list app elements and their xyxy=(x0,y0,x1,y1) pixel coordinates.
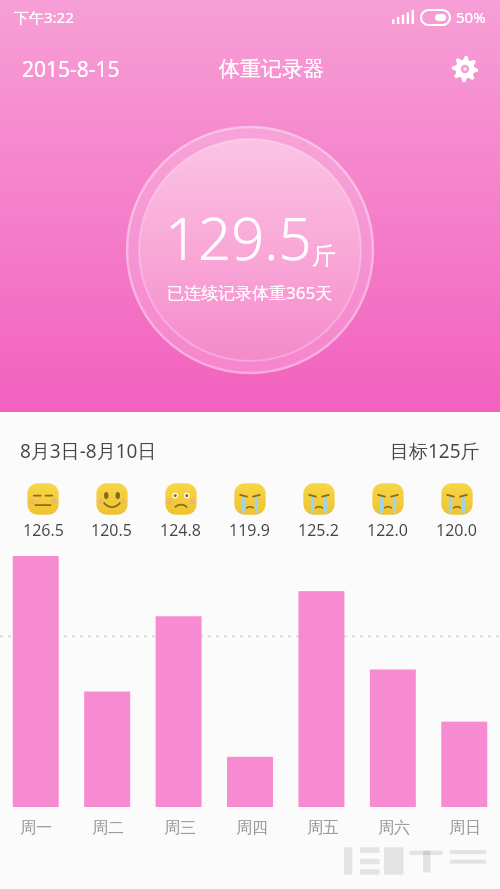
staticText: 129.5 xyxy=(165,198,312,277)
staticText: 126.5 xyxy=(23,519,64,541)
button[interactable]: 125.2 xyxy=(284,482,353,541)
staticText: 125.2 xyxy=(298,519,339,541)
staticText: 周二 xyxy=(92,818,124,838)
staticText: 8月3日-8月10日 xyxy=(20,438,157,464)
button[interactable] xyxy=(126,126,374,374)
staticText: 周四 xyxy=(236,818,268,838)
staticText: 120.0 xyxy=(436,519,477,541)
button[interactable]: 119.9 xyxy=(215,482,284,541)
staticText: 124.8 xyxy=(160,519,201,541)
button[interactable]: 126.5 xyxy=(9,482,77,541)
staticText: 已连续记录体重365天 xyxy=(167,281,333,304)
staticText: 周三 xyxy=(164,818,196,838)
button[interactable]: 2015-8-15 xyxy=(22,55,120,84)
staticText: 体重记录器 xyxy=(219,56,324,82)
staticText: 50% xyxy=(456,7,486,27)
button[interactable]: 124.8 xyxy=(146,482,215,541)
staticText: 周五 xyxy=(307,818,339,838)
staticText: 周一 xyxy=(20,818,52,838)
staticText: 周六 xyxy=(378,818,410,838)
staticText: 目标125斤 xyxy=(390,438,480,464)
button[interactable]: 120.0 xyxy=(422,482,491,541)
button[interactable]: 122.0 xyxy=(353,482,422,541)
staticText: 下午3:22 xyxy=(14,7,74,27)
staticText: 120.5 xyxy=(91,519,132,541)
button[interactable]: Settings xyxy=(448,52,482,86)
staticText: 斤 xyxy=(312,241,336,271)
staticText: 周日 xyxy=(449,818,481,838)
staticText: 119.9 xyxy=(229,519,270,541)
button[interactable]: 120.5 xyxy=(77,482,146,541)
staticText: 122.0 xyxy=(367,519,408,541)
